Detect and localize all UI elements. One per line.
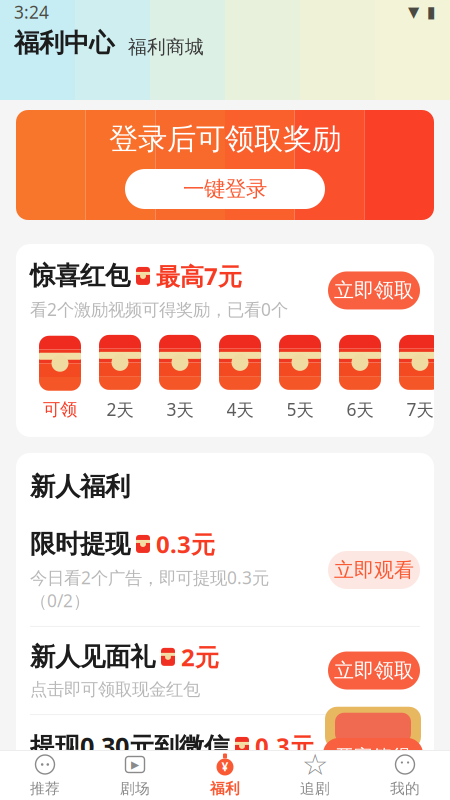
staticText: 4天 [226,398,253,421]
staticText: ▮ [427,3,436,21]
staticText: 看2个激励视频可得奖励，已看0个 [30,298,288,321]
staticText: 立即领取 [334,278,414,303]
staticText: 最高7元 [156,260,242,292]
button[interactable]: ▶ [90,751,180,800]
button[interactable]: 推荐 [0,751,90,800]
staticText: 推荐 [30,779,60,797]
staticText: 3天 [166,398,193,421]
staticText: 福利 [210,779,240,797]
staticText: 今日观看30分钟，即可提现0.30元 [30,769,289,792]
staticText: ▶ [131,758,139,770]
staticText: 可领 [43,399,77,420]
staticText: 提现0.30元到微信 [30,729,229,763]
staticText: ☆ [302,748,328,781]
button[interactable]: 一键登录 [125,169,325,209]
staticText: 0.3元 [156,528,215,560]
staticText: 剧场 [120,779,150,797]
button[interactable]: 福利中心 [14,27,114,58]
staticText: 一键登录 [183,176,267,202]
staticText: 2元 [181,641,219,673]
staticText: 立即领取 [334,658,414,683]
staticText: 今日看2个广告，即可提现0.3元（0/2） [30,566,269,612]
staticText: 6天 [346,398,373,421]
staticText: 我的 [390,779,420,797]
button[interactable]: ☆ [270,751,360,800]
staticText: 限时提现 [30,528,130,559]
button[interactable]: 立即领取 [328,651,420,689]
button[interactable]: 立即领取 [328,271,420,309]
staticText: 追剧 [300,779,330,797]
button[interactable]: 立即观看 [328,551,420,589]
button[interactable]: 开宝箱得金币 [314,700,432,800]
staticText: 福利中心 [14,27,114,58]
staticText: 2天 [106,398,133,421]
staticText: 惊喜红包 [30,260,130,291]
staticText: ¥ [221,758,228,774]
staticText: ▼ [408,4,419,20]
staticText: 福利商城 [128,36,204,58]
staticText: 0.3元 [255,730,314,762]
button[interactable]: ¥ [180,751,270,800]
staticText: 5天 [286,398,313,421]
button[interactable]: 福利商城 [128,36,204,58]
staticText: 7天 [406,398,433,421]
staticText: 立即观看 [334,558,414,582]
staticText: 登录后可领取奖励 [109,121,341,157]
button[interactable]: 我的 [360,751,450,800]
staticText: 点击即可领取现金红包 [30,679,200,700]
staticText: 开宝箱得金币 [335,745,411,791]
staticText: 新人见面礼 [30,641,155,672]
staticText: 3:24 [14,0,49,23]
staticText: 新人福利 [30,471,130,502]
